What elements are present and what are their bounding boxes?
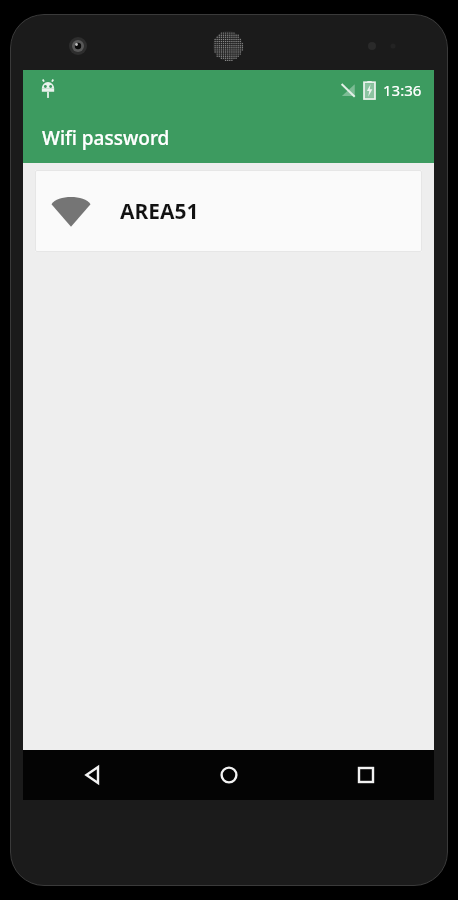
button[interactable]: Back [23, 750, 160, 800]
button[interactable]: Recent apps [297, 750, 434, 800]
button[interactable]: Home [160, 750, 297, 800]
button[interactable]: AREA51 [35, 170, 422, 252]
staticText: Wifi password [42, 125, 170, 151]
staticText: 13:36 [383, 80, 422, 100]
staticText: AREA51 [120, 197, 199, 226]
